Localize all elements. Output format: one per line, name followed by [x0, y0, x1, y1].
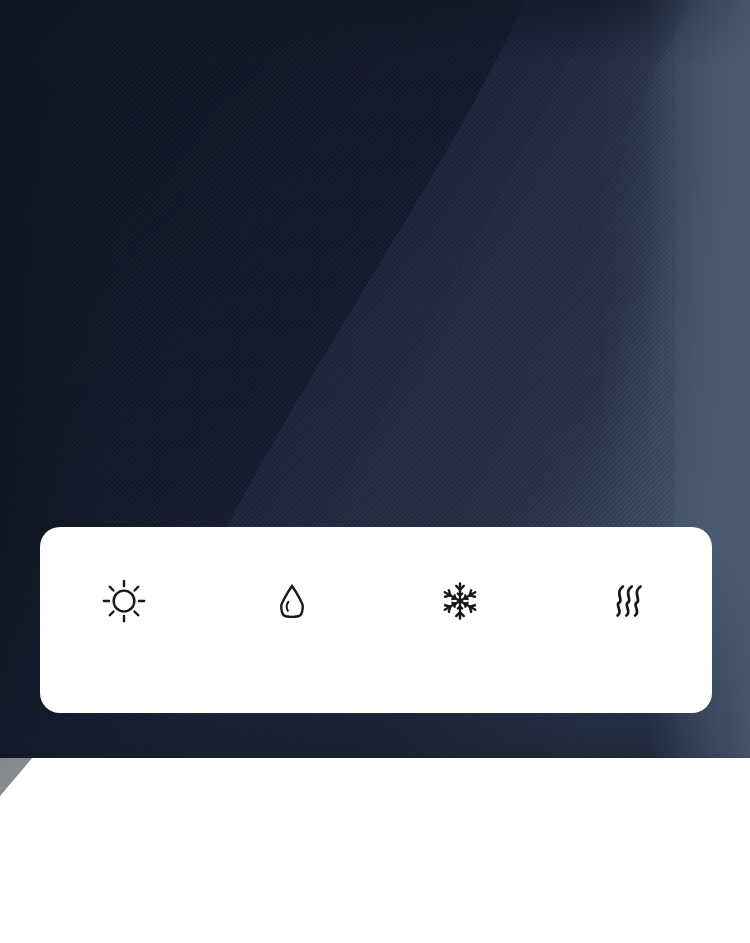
- button[interactable]: Sunny: [40, 579, 208, 661]
- button[interactable]: Heat: [544, 579, 712, 661]
- button[interactable]: Humidity: [208, 579, 376, 661]
- button[interactable]: Cold: [376, 579, 544, 661]
